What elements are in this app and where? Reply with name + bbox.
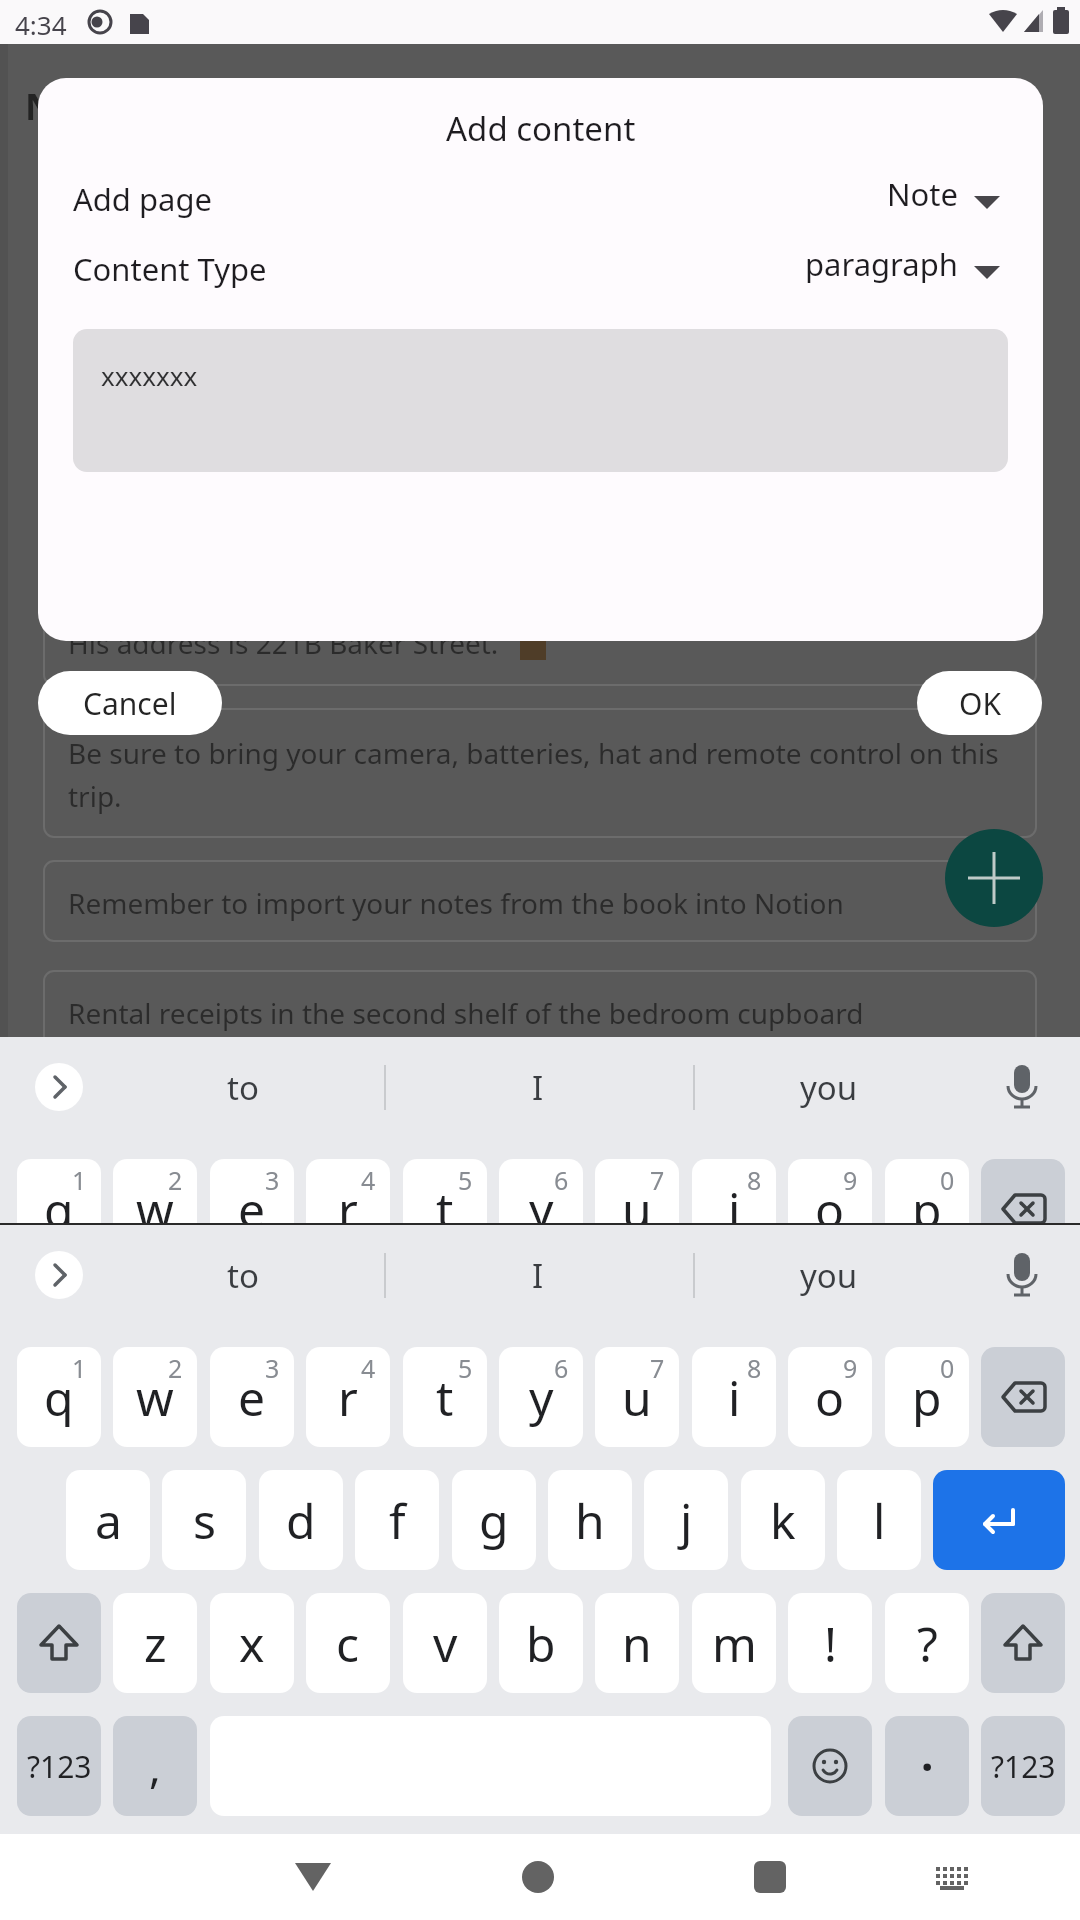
- staticText: o: [815, 1177, 845, 1223]
- button[interactable]: y: [499, 1159, 583, 1223]
- button[interactable]: v: [403, 1593, 487, 1693]
- button[interactable]: I: [425, 1057, 651, 1117]
- button[interactable]: !: [788, 1593, 872, 1693]
- staticText: Cancel: [83, 683, 177, 724]
- staticText: z: [144, 1611, 167, 1676]
- button[interactable]: o: [788, 1159, 872, 1223]
- staticText: ?: [917, 1611, 938, 1676]
- button[interactable]: i: [692, 1347, 776, 1447]
- button[interactable]: o: [788, 1347, 872, 1447]
- button[interactable]: l: [837, 1470, 921, 1570]
- button[interactable]: f: [355, 1470, 439, 1570]
- staticText: v: [433, 1611, 458, 1676]
- staticText: trip.: [68, 777, 122, 815]
- button[interactable]: [35, 1063, 83, 1111]
- staticText: Note: [887, 173, 958, 215]
- button[interactable]: c: [306, 1593, 390, 1693]
- button[interactable]: p: [885, 1347, 969, 1447]
- button[interactable]: a: [66, 1470, 150, 1570]
- button[interactable]: w: [113, 1159, 197, 1223]
- staticText: y: [529, 1177, 554, 1223]
- button[interactable]: k: [741, 1470, 825, 1570]
- button[interactable]: w: [113, 1347, 197, 1447]
- button[interactable]: x: [210, 1593, 294, 1693]
- staticText: ·: [921, 1736, 934, 1796]
- staticText: Remember to import your notes from the b…: [68, 884, 844, 922]
- button[interactable]: [945, 829, 1043, 927]
- button[interactable]: [283, 1847, 343, 1907]
- button[interactable]: you: [716, 1245, 942, 1305]
- button[interactable]: ·: [885, 1716, 969, 1816]
- button[interactable]: y: [499, 1347, 583, 1447]
- staticText: to: [227, 1065, 259, 1110]
- button[interactable]: r: [306, 1159, 390, 1223]
- button[interactable]: t: [403, 1159, 487, 1223]
- button[interactable]: [981, 1593, 1065, 1693]
- staticText: 5: [458, 1163, 473, 1197]
- staticText: f: [389, 1488, 406, 1553]
- staticText: t: [436, 1177, 454, 1223]
- button[interactable]: [981, 1159, 1065, 1223]
- button[interactable]: h: [548, 1470, 632, 1570]
- staticText: b: [526, 1611, 556, 1676]
- button[interactable]: p: [885, 1159, 969, 1223]
- button[interactable]: ?123: [981, 1716, 1065, 1816]
- button[interactable]: g: [452, 1470, 536, 1570]
- button[interactable]: d: [259, 1470, 343, 1570]
- button[interactable]: [933, 1470, 1065, 1570]
- button[interactable]: Note: [688, 168, 958, 220]
- button[interactable]: you: [716, 1057, 942, 1117]
- button[interactable]: u: [595, 1159, 679, 1223]
- button[interactable]: ,: [113, 1716, 197, 1816]
- staticText: 4: [361, 1163, 376, 1197]
- button[interactable]: q: [17, 1347, 101, 1447]
- button[interactable]: [922, 1847, 982, 1907]
- button[interactable]: [740, 1847, 800, 1907]
- staticText: you: [800, 1065, 858, 1110]
- staticText: l: [873, 1488, 886, 1553]
- staticText: 3: [265, 1163, 280, 1197]
- button[interactable]: e: [210, 1159, 294, 1223]
- staticText: s: [193, 1488, 216, 1553]
- staticText: w: [136, 1177, 174, 1223]
- staticText: to: [227, 1253, 259, 1298]
- button[interactable]: to: [130, 1057, 356, 1117]
- button[interactable]: xxxxxxx: [73, 329, 1008, 472]
- button[interactable]: [981, 1347, 1065, 1447]
- staticText: r: [338, 1177, 358, 1223]
- button[interactable]: OK: [917, 671, 1042, 735]
- button[interactable]: t: [403, 1347, 487, 1447]
- button[interactable]: [35, 1251, 83, 1299]
- staticText: OK: [959, 683, 1001, 724]
- button[interactable]: to: [130, 1245, 356, 1305]
- staticText: 8: [747, 1163, 762, 1197]
- button[interactable]: n: [595, 1593, 679, 1693]
- button[interactable]: [508, 1847, 568, 1907]
- button[interactable]: [17, 1593, 101, 1693]
- staticText: u: [622, 1365, 652, 1430]
- button[interactable]: u: [595, 1347, 679, 1447]
- button[interactable]: m: [692, 1593, 776, 1693]
- staticText: p: [912, 1365, 942, 1430]
- staticText: k: [770, 1488, 796, 1553]
- staticText: g: [479, 1488, 509, 1553]
- button[interactable]: s: [162, 1470, 246, 1570]
- button[interactable]: z: [113, 1593, 197, 1693]
- staticText: Add page: [73, 178, 213, 220]
- button[interactable]: q: [17, 1159, 101, 1223]
- staticText: Be sure to bring your camera, batteries,…: [68, 734, 999, 772]
- staticText: 3: [265, 1351, 280, 1385]
- button[interactable]: j: [644, 1470, 728, 1570]
- button[interactable]: r: [306, 1347, 390, 1447]
- staticText: i: [728, 1365, 741, 1430]
- button[interactable]: b: [499, 1593, 583, 1693]
- button[interactable]: ?123: [17, 1716, 101, 1816]
- button[interactable]: e: [210, 1347, 294, 1447]
- button[interactable]: i: [692, 1159, 776, 1223]
- button[interactable]: I: [425, 1245, 651, 1305]
- button[interactable]: Cancel: [38, 671, 222, 735]
- button[interactable]: paragraph: [688, 238, 958, 290]
- button[interactable]: [788, 1716, 872, 1816]
- button[interactable]: ?: [885, 1593, 969, 1693]
